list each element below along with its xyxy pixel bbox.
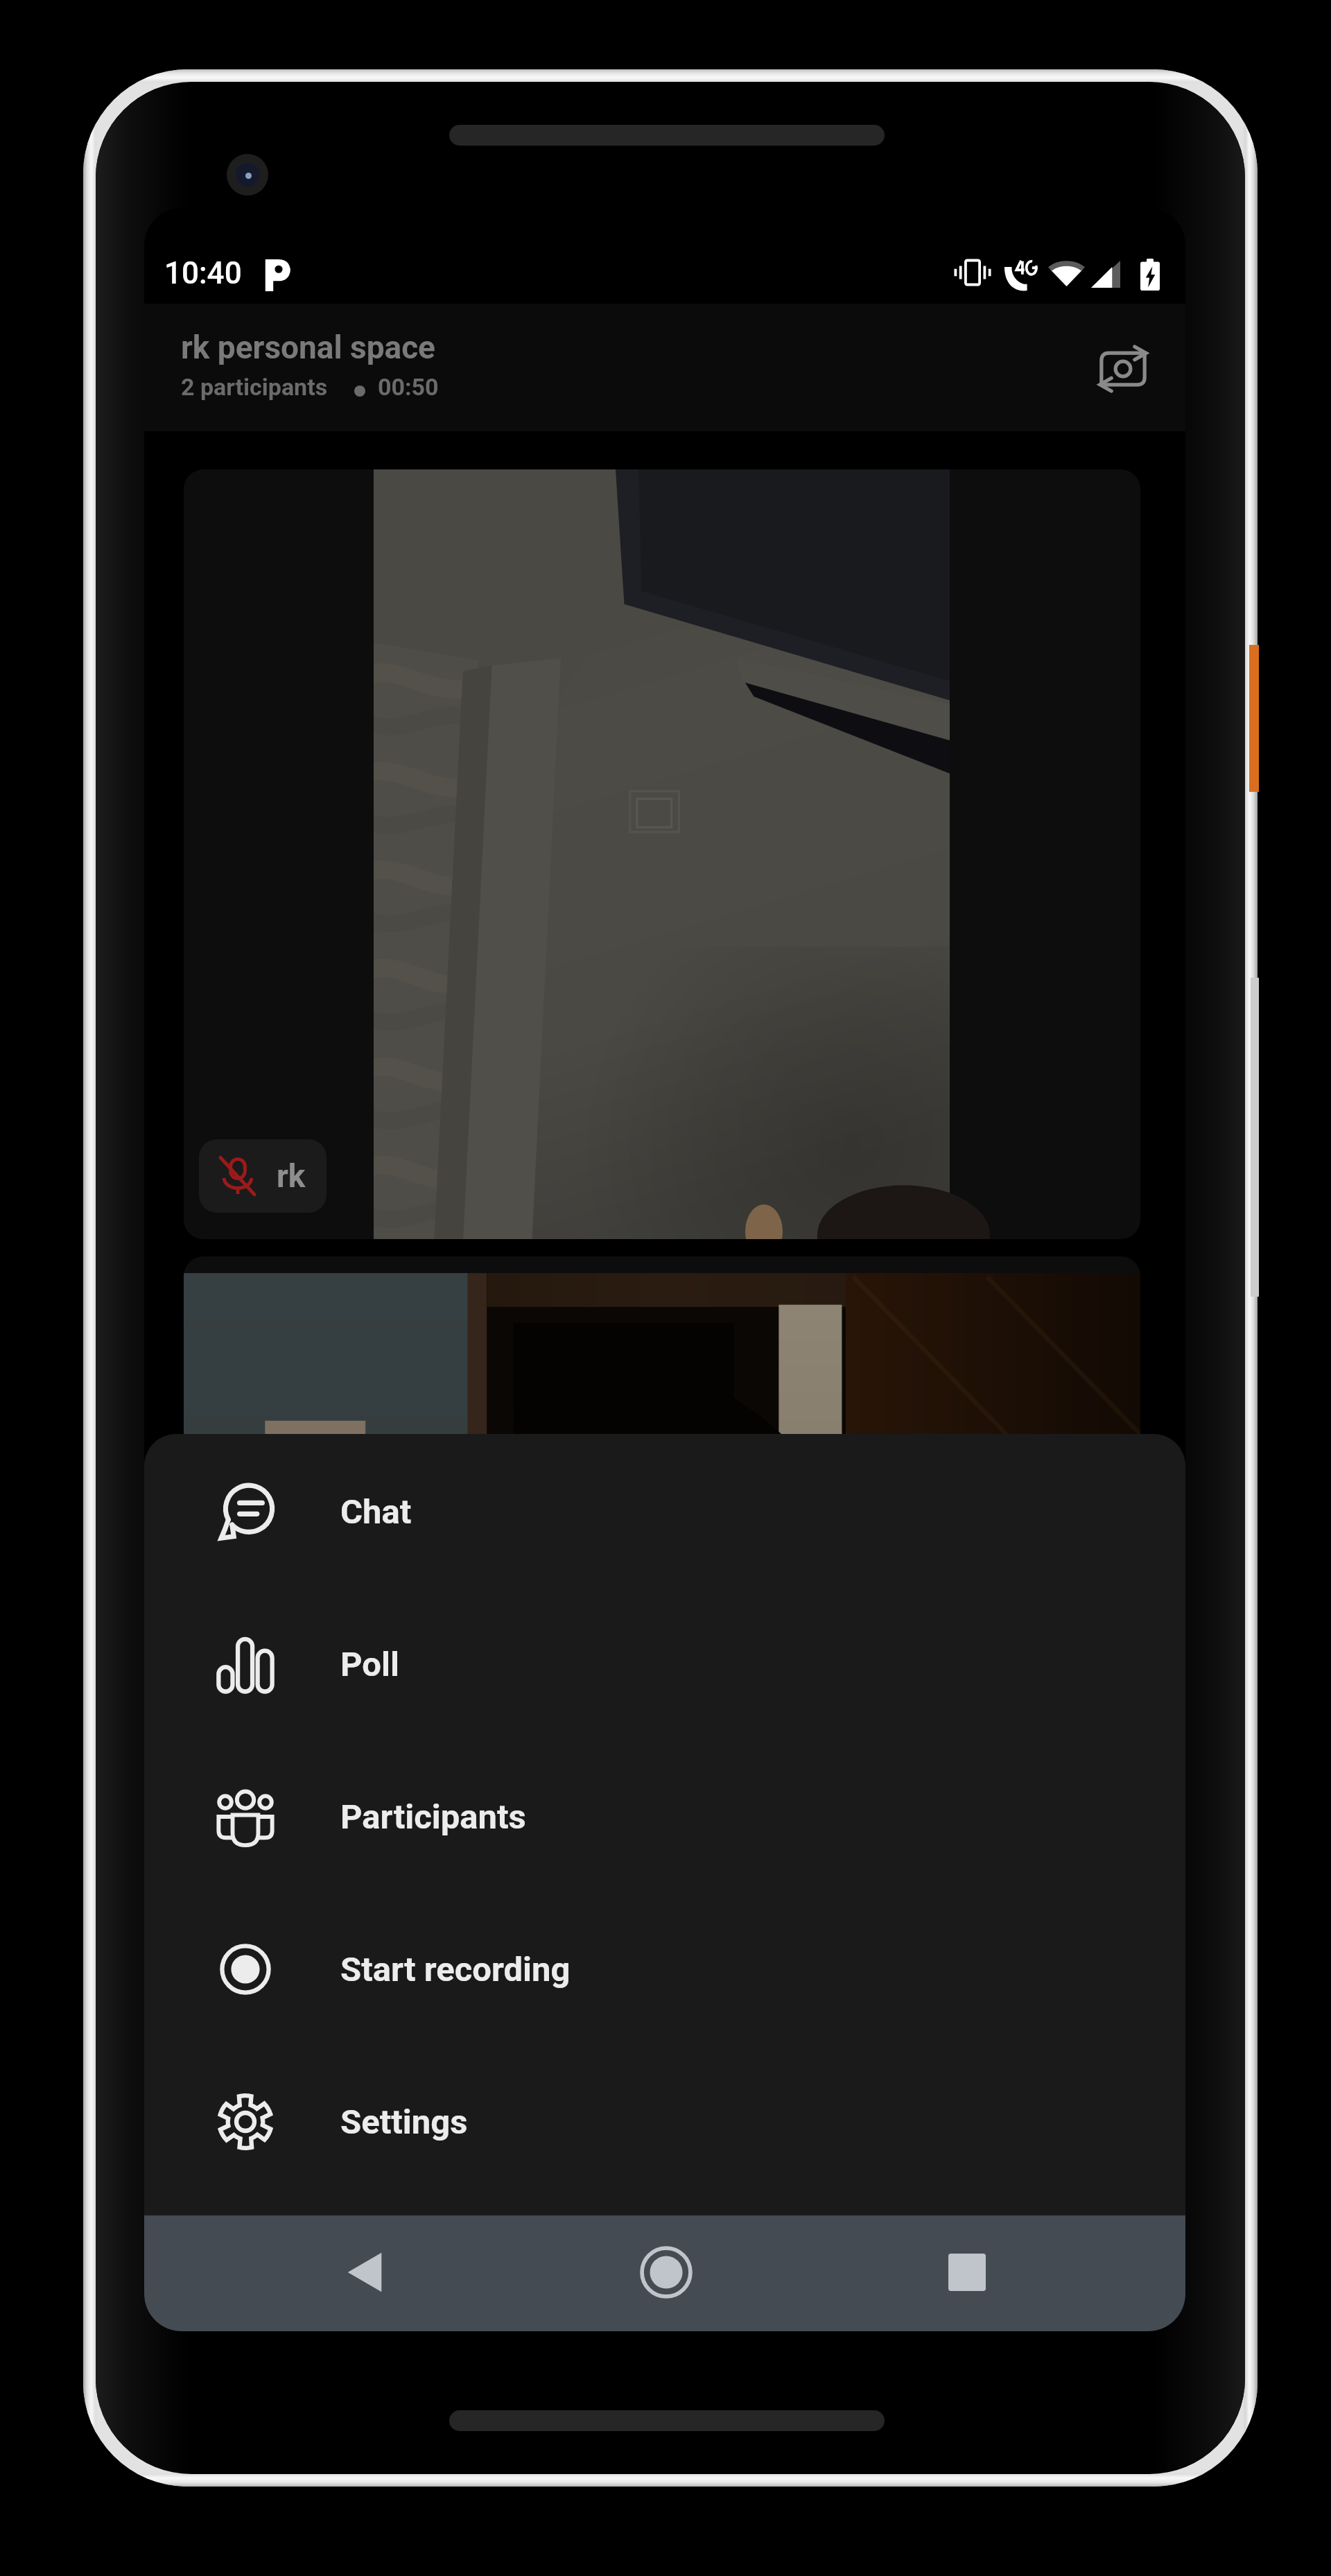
staticText: Participants — [340, 1797, 526, 1837]
staticText: 00:50 — [378, 373, 439, 401]
staticText: 2 participants — [181, 373, 328, 401]
button[interactable]: Recent apps — [925, 2231, 1009, 2314]
staticText: Poll — [340, 1645, 399, 1684]
button[interactable]: Start recording — [144, 1893, 1185, 2046]
button[interactable]: Chat — [144, 1435, 1185, 1588]
button[interactable]: Home — [625, 2231, 708, 2314]
button[interactable]: Back — [323, 2231, 406, 2314]
button[interactable]: Settings — [144, 2046, 1185, 2198]
staticText: 10:40 — [164, 255, 242, 291]
button[interactable]: rk — [184, 469, 1140, 1239]
button[interactable]: Participants — [144, 1740, 1185, 1893]
button[interactable]: rk — [199, 1139, 327, 1213]
button[interactable]: Poll — [144, 1588, 1185, 1740]
staticText: Settings — [340, 2102, 468, 2142]
staticText: Chat — [340, 1492, 412, 1532]
staticText: Start recording — [340, 1950, 571, 1989]
button[interactable]: rk personal space — [144, 304, 1185, 431]
staticText: rk — [277, 1157, 306, 1195]
staticText: rk personal space — [181, 329, 435, 366]
button[interactable] — [184, 1256, 1140, 2026]
button[interactable]: Switch camera — [1087, 333, 1159, 405]
